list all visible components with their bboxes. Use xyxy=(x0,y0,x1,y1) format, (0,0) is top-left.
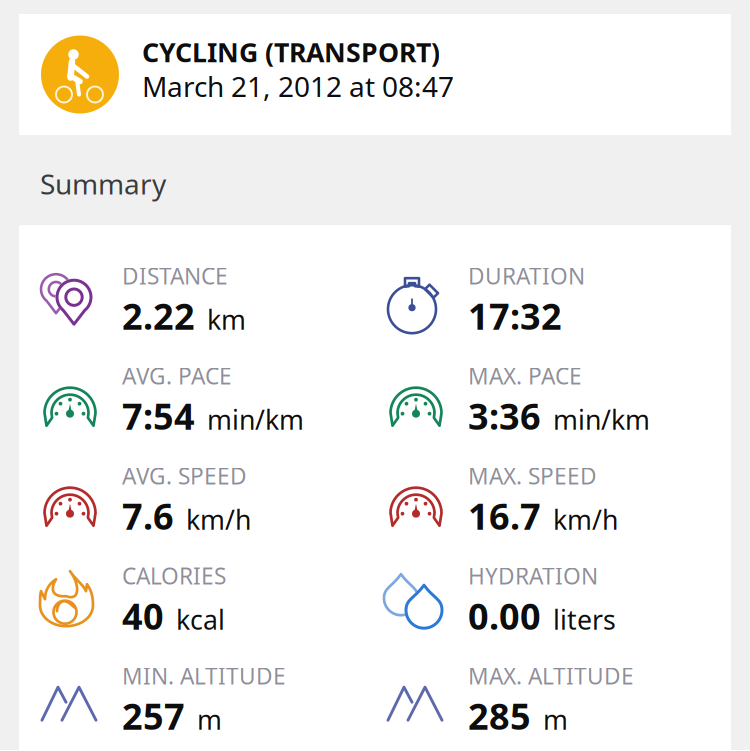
staticText: min/km xyxy=(553,402,650,437)
staticText: DISTANCE xyxy=(122,261,228,291)
staticText: AVG. SPEED xyxy=(122,461,247,491)
staticText: kcal xyxy=(176,602,225,637)
staticText: MIN. ALTITUDE xyxy=(122,661,286,691)
staticText: 7.6 xyxy=(122,492,174,540)
staticText: 0.00 xyxy=(468,592,541,640)
staticText: 257 xyxy=(122,692,185,740)
staticText: DURATION xyxy=(468,261,585,291)
staticText: 16.7 xyxy=(468,492,541,540)
staticText: MAX. PACE xyxy=(468,361,582,391)
staticText: m xyxy=(197,702,222,737)
button[interactable]: CYCLING (TRANSPORT) xyxy=(19,14,731,135)
staticText: 285 xyxy=(468,692,531,740)
staticText: Summary xyxy=(40,165,166,202)
staticText: min/km xyxy=(207,402,304,437)
staticText: m xyxy=(543,702,568,737)
staticText: km/h xyxy=(553,502,618,537)
staticText: km xyxy=(207,302,246,337)
staticText: km/h xyxy=(186,502,251,537)
staticText: 7:54 xyxy=(122,392,195,440)
staticText: MAX. ALTITUDE xyxy=(468,661,634,691)
staticText: CALORIES xyxy=(122,561,226,591)
staticText: March 21, 2012 at 08:47 xyxy=(142,68,454,105)
staticText: 40 xyxy=(122,592,164,640)
staticText: AVG. PACE xyxy=(122,361,232,391)
staticText: 17:32 xyxy=(468,292,562,340)
staticText: liters xyxy=(553,602,616,637)
staticText: 3:36 xyxy=(468,392,541,440)
staticText: CYCLING (TRANSPORT) xyxy=(142,34,440,70)
staticText: 2.22 xyxy=(122,292,195,340)
staticText: MAX. SPEED xyxy=(468,461,597,491)
staticText: HYDRATION xyxy=(468,561,598,591)
